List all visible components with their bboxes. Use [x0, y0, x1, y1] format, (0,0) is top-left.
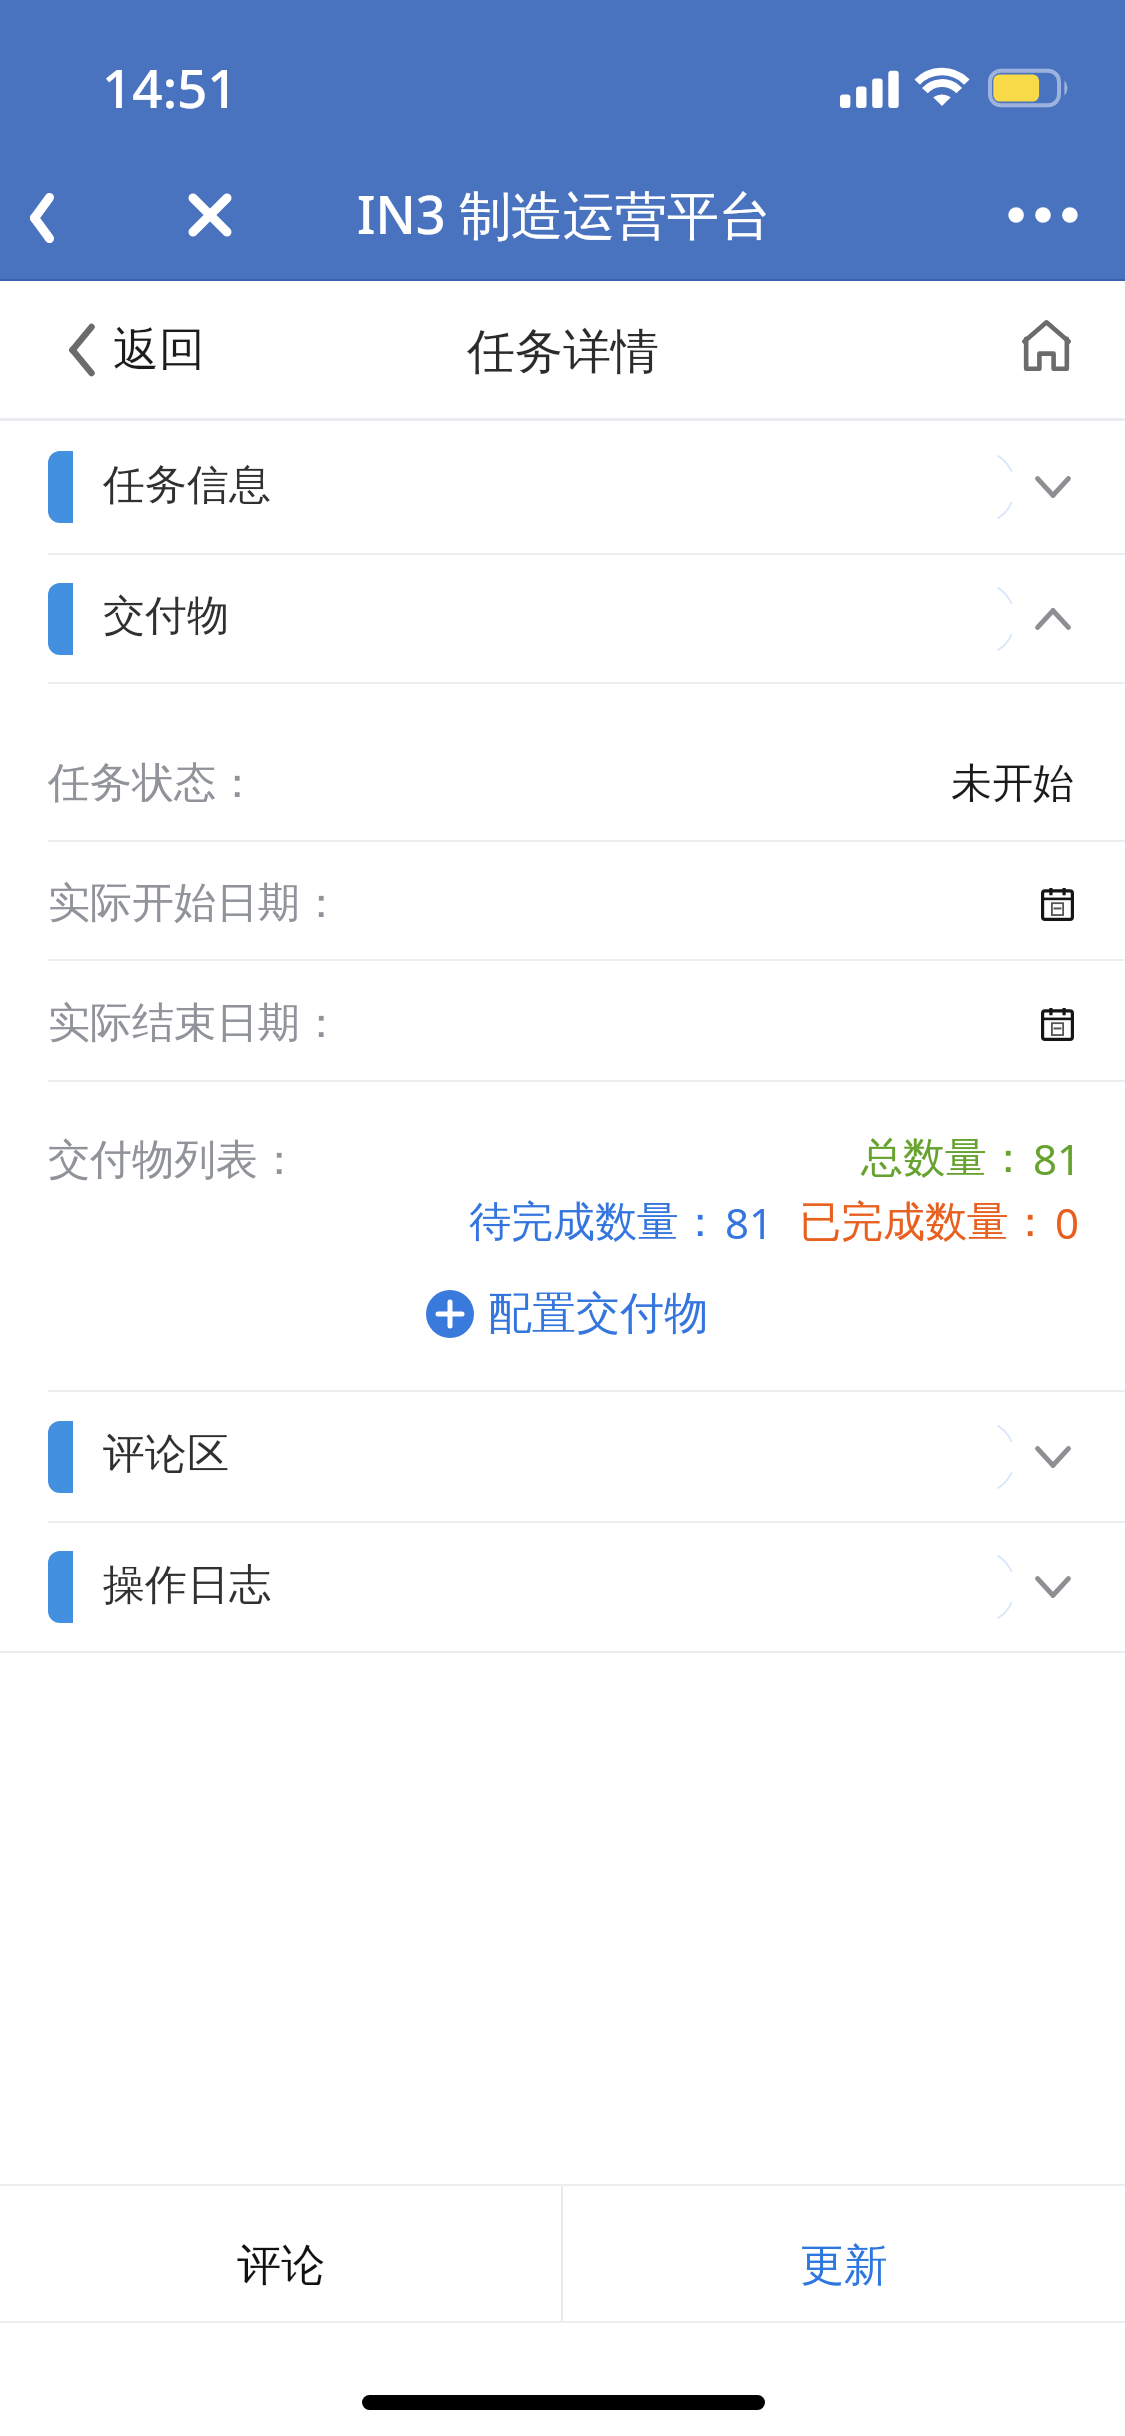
- button[interactable]: 更新: [563, 2186, 1125, 2321]
- staticText: 配置交付物: [488, 1286, 708, 1341]
- staticText: 评论: [237, 2238, 325, 2293]
- button[interactable]: Home: [1010, 309, 1082, 381]
- button[interactable]: 实际开始日期：: [0, 842, 1125, 959]
- staticText: 14:51: [102, 51, 238, 123]
- button[interactable]: 交付物: [0, 555, 1125, 682]
- button[interactable]: 评论区: [0, 1392, 1125, 1521]
- staticText: 0: [1055, 1194, 1080, 1251]
- button[interactable]: 任务状态：: [0, 720, 1125, 840]
- button[interactable]: 任务信息: [0, 421, 1125, 553]
- staticText: 评论区: [103, 1428, 229, 1481]
- staticText: 总数量：: [861, 1132, 1029, 1185]
- button[interactable]: More options: [1003, 176, 1083, 256]
- button[interactable]: Back: [2, 178, 82, 258]
- staticText: 更新: [800, 2238, 888, 2293]
- staticText: 实际开始日期：: [48, 877, 342, 930]
- staticText: 已完成数量：: [799, 1196, 1051, 1249]
- staticText: 81: [1033, 1130, 1082, 1187]
- staticText: 未开始: [951, 758, 1074, 810]
- button[interactable]: 操作日志: [0, 1523, 1125, 1651]
- button[interactable]: Close: [170, 175, 250, 255]
- staticText: 操作日志: [103, 1559, 271, 1612]
- button[interactable]: 评论: [0, 2186, 561, 2321]
- button[interactable]: 返回: [66, 281, 205, 418]
- staticText: IN3 制造运营平台: [357, 178, 772, 249]
- staticText: 任务详情: [467, 322, 659, 382]
- staticText: 81: [725, 1194, 774, 1251]
- staticText: 待完成数量：: [469, 1196, 721, 1249]
- staticText: 任务信息: [103, 459, 271, 512]
- staticText: 任务状态：: [48, 757, 258, 810]
- staticText: 实际结束日期：: [48, 997, 342, 1050]
- button[interactable]: 配置交付物: [426, 1286, 708, 1341]
- staticText: 返回: [113, 321, 205, 379]
- button[interactable]: 实际结束日期：: [0, 961, 1125, 1080]
- staticText: 交付物: [103, 590, 229, 643]
- staticText: 交付物列表：: [48, 1134, 300, 1187]
